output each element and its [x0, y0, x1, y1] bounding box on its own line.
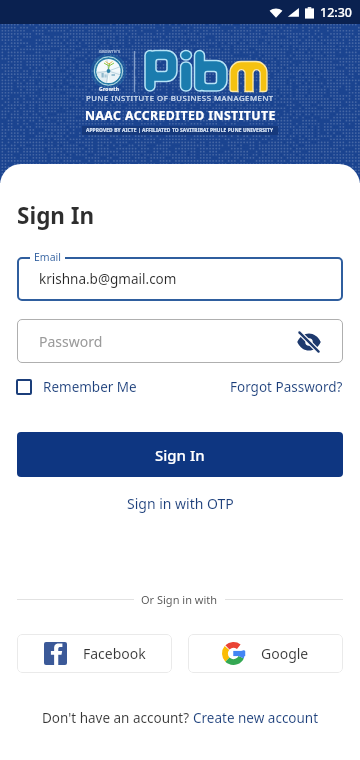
staticText: Don't have an account?	[42, 709, 193, 727]
button[interactable]: Create new account	[193, 709, 319, 727]
staticText: GROWTH'S	[99, 49, 121, 54]
staticText: Google	[261, 644, 309, 663]
button[interactable]: Show password	[296, 329, 321, 354]
button[interactable]: Password	[17, 319, 343, 363]
staticText: Password	[39, 332, 103, 351]
staticText: Create new account	[193, 709, 319, 727]
staticText: Forgot Password?	[230, 378, 343, 396]
staticText: Sign in with OTP	[127, 494, 234, 513]
staticText: krishna.b@gmail.com	[39, 270, 177, 288]
button[interactable]: Remember Me	[16, 378, 137, 396]
button[interactable]: Google	[188, 634, 343, 673]
button[interactable]: Forgot Password?	[230, 378, 343, 396]
staticText: PUNE INSTITUTE OF BUSINESS MANAGEMENT	[86, 93, 274, 104]
staticText: Facebook	[83, 644, 146, 663]
staticText: Email	[34, 250, 61, 264]
staticText: Sign In	[155, 445, 205, 465]
staticText: Remember Me	[43, 378, 137, 396]
staticText: Or Sign in with	[141, 592, 218, 607]
staticText: Growth	[99, 86, 120, 93]
button[interactable]: krishna.b@gmail.com	[17, 257, 343, 301]
button[interactable]: Facebook	[17, 634, 172, 673]
button[interactable]: Sign in with OTP	[121, 492, 240, 515]
staticText: NAAC ACCREDITED INSTITUTE	[85, 107, 276, 124]
staticText: APPROVED BY AICTE | AFFILIATED TO SAVITR…	[86, 127, 274, 134]
button[interactable]: Sign In	[17, 432, 343, 477]
staticText: 12:30	[320, 4, 353, 21]
staticText: Sign In	[17, 200, 95, 231]
